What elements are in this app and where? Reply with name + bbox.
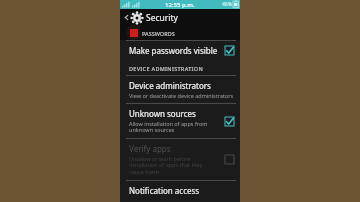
staticText: PASSWORDS: [142, 30, 175, 37]
other: Unknown sources: [225, 117, 234, 126]
staticText: Device administrators: [129, 80, 211, 91]
staticText: Notification access: [129, 185, 200, 196]
staticText: 12:55 p.m.: [165, 1, 195, 9]
staticText: 46%: [222, 1, 232, 8]
other: Back: [123, 14, 130, 21]
staticText: Security: [146, 12, 178, 24]
button[interactable]: Back: [120, 9, 240, 26]
staticText: Verify apps: [129, 143, 171, 154]
other: Verify apps: [225, 155, 234, 164]
button[interactable]: Make passwords visible: [120, 41, 240, 60]
button[interactable]: Unknown sources: [120, 104, 240, 138]
button[interactable]: Notification access: [120, 181, 240, 202]
staticText: View or deactivate device administrators: [129, 92, 234, 99]
button[interactable]: Verify apps: [120, 139, 240, 180]
staticText: Disallow or warn before installation of …: [129, 155, 203, 176]
other: Make passwords visible: [225, 46, 234, 55]
staticText: Allow installation of apps from unknown …: [129, 120, 208, 134]
staticText: DEVICE ADMINISTRATION: [129, 65, 203, 72]
staticText: Make passwords visible: [129, 45, 218, 56]
button[interactable]: Device administrators: [120, 76, 240, 103]
staticText: Unknown sources: [129, 108, 196, 119]
